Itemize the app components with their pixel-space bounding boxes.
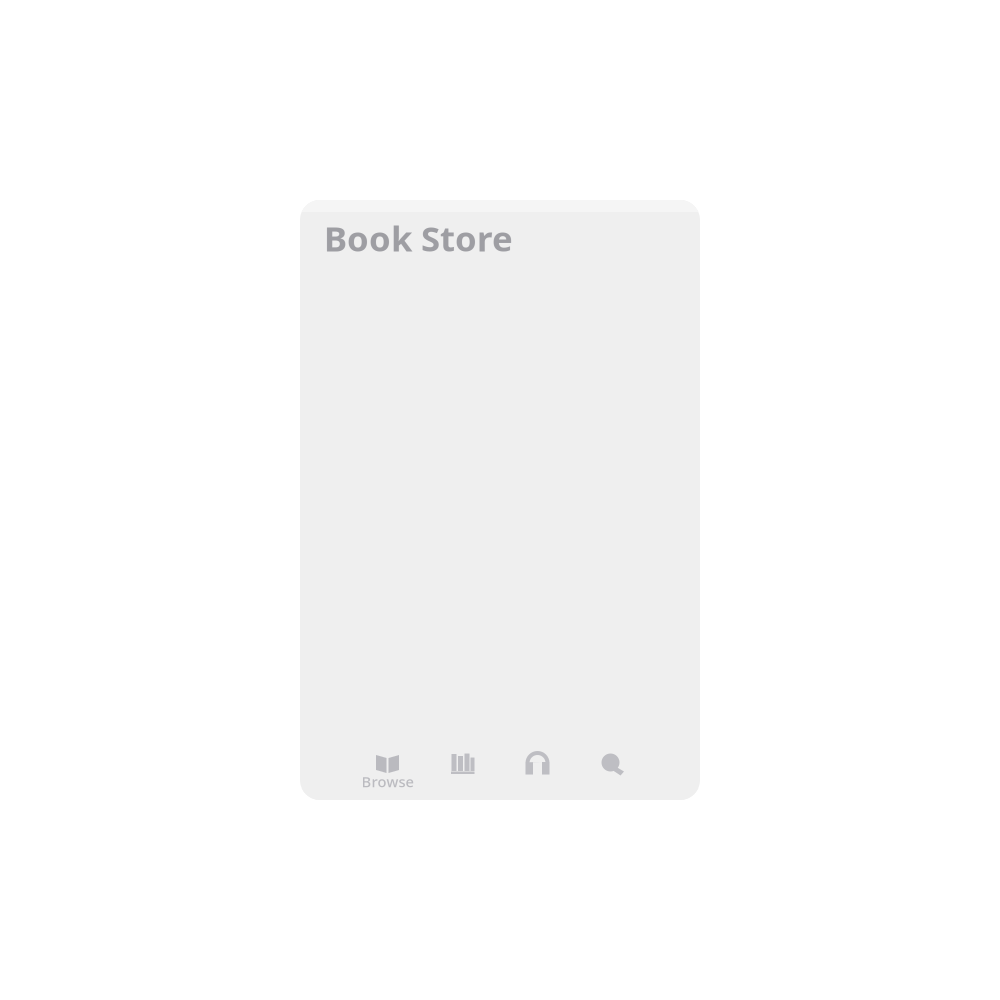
button[interactable]: Library — [425, 750, 500, 788]
button[interactable]: Listen — [500, 750, 575, 788]
button[interactable]: Search — [575, 750, 650, 788]
staticText: Browse — [361, 772, 413, 791]
button[interactable]: Browse — [350, 750, 425, 788]
staticText: Book Store — [324, 215, 513, 261]
